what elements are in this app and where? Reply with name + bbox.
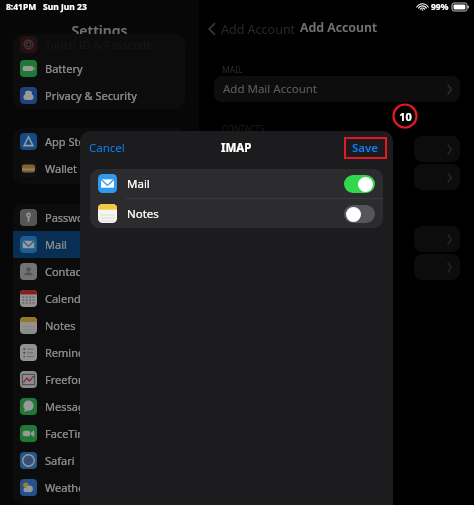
button[interactable]: Cancel [80,136,131,160]
button[interactable]: Privacy & Security [13,82,185,109]
button[interactable]: Back [205,22,219,36]
button[interactable]: Battery [13,55,185,82]
staticText: Notes [127,206,159,222]
button[interactable]: Weather [13,474,185,501]
button[interactable]: Save [344,137,387,159]
staticText: 8:41PM [6,1,37,13]
staticText: CONTACTS [222,123,265,135]
staticText: Reminders [45,345,101,360]
staticText: Privacy & Security [45,88,137,103]
staticText: Contacts [45,264,91,279]
staticText: Calendar [45,291,92,306]
staticText: Add Account [300,19,377,36]
staticText: Settings [0,21,199,40]
staticText: Freeform [45,372,93,387]
button[interactable]: App Store [13,128,185,155]
button[interactable]: Add Mail Account [214,76,460,102]
staticText: IMAP [221,140,252,156]
staticText: Wallet & Apple Pay [45,161,142,176]
button[interactable]: Messages [13,393,185,420]
staticText: Passwords [45,210,101,225]
button[interactable]: Calendar [13,285,185,312]
button[interactable]: Notes [13,312,185,339]
staticText: FaceTime [45,426,94,441]
button[interactable]: Mail [90,169,383,198]
staticText: Notes [45,318,76,333]
staticText: App Store [45,134,96,149]
button[interactable] [414,226,460,252]
button[interactable]: Add Account [221,21,296,38]
button[interactable]: Mail [13,231,185,258]
staticText: Battery [45,61,83,76]
staticText: Mail [45,237,67,252]
staticText: Safari [45,453,75,468]
staticText: MAIL [222,64,243,76]
staticText: Sun Jun 23 [43,1,87,13]
staticText: Touch ID & Passcode [45,37,153,52]
button[interactable]: Passwords [13,204,185,231]
button[interactable] [414,254,460,280]
button[interactable]: Safari [13,447,185,474]
staticText: 99% [431,1,449,13]
button[interactable] [414,136,460,162]
button[interactable]: Wallet & Apple Pay [13,155,185,182]
button[interactable]: Reminders [13,339,185,366]
staticText: 10 [399,109,412,124]
staticText: Messages [45,399,97,414]
button[interactable] [344,175,375,193]
button[interactable]: FaceTime [13,420,185,447]
button[interactable]: Notes [90,199,383,228]
button[interactable] [344,205,375,223]
button[interactable]: Contacts [13,258,185,285]
staticText: Add Mail Account [223,81,318,97]
button[interactable]: Touch ID & Passcode [13,34,185,55]
button[interactable]: Freeform [13,366,185,393]
staticText: Save [352,140,379,156]
staticText: Cancel [89,140,125,156]
button[interactable] [414,164,460,190]
staticText: Weather [45,480,89,495]
staticText: Mail [127,176,150,192]
